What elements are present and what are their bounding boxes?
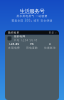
staticText: 128.40	[8, 42, 19, 46]
staticText: 覆盖全国 300+ 城市 安全便捷	[11, 19, 52, 22]
staticText: 用水用电用气 一站缴费	[16, 15, 47, 18]
staticText: 96	[30, 42, 34, 46]
staticText: 待缴账单	[44, 46, 56, 50]
staticText: 生活服务号	[19, 8, 44, 15]
staticText: 我的账单	[7, 31, 19, 34]
staticText: 户号 1234 5678	[13, 38, 37, 42]
staticText: 本期电费	[8, 46, 20, 50]
staticText: 国家电网	[13, 35, 25, 38]
staticText: 用电度数	[26, 46, 38, 50]
staticText: 更多 ›	[48, 31, 56, 34]
staticText: 3	[49, 42, 51, 46]
